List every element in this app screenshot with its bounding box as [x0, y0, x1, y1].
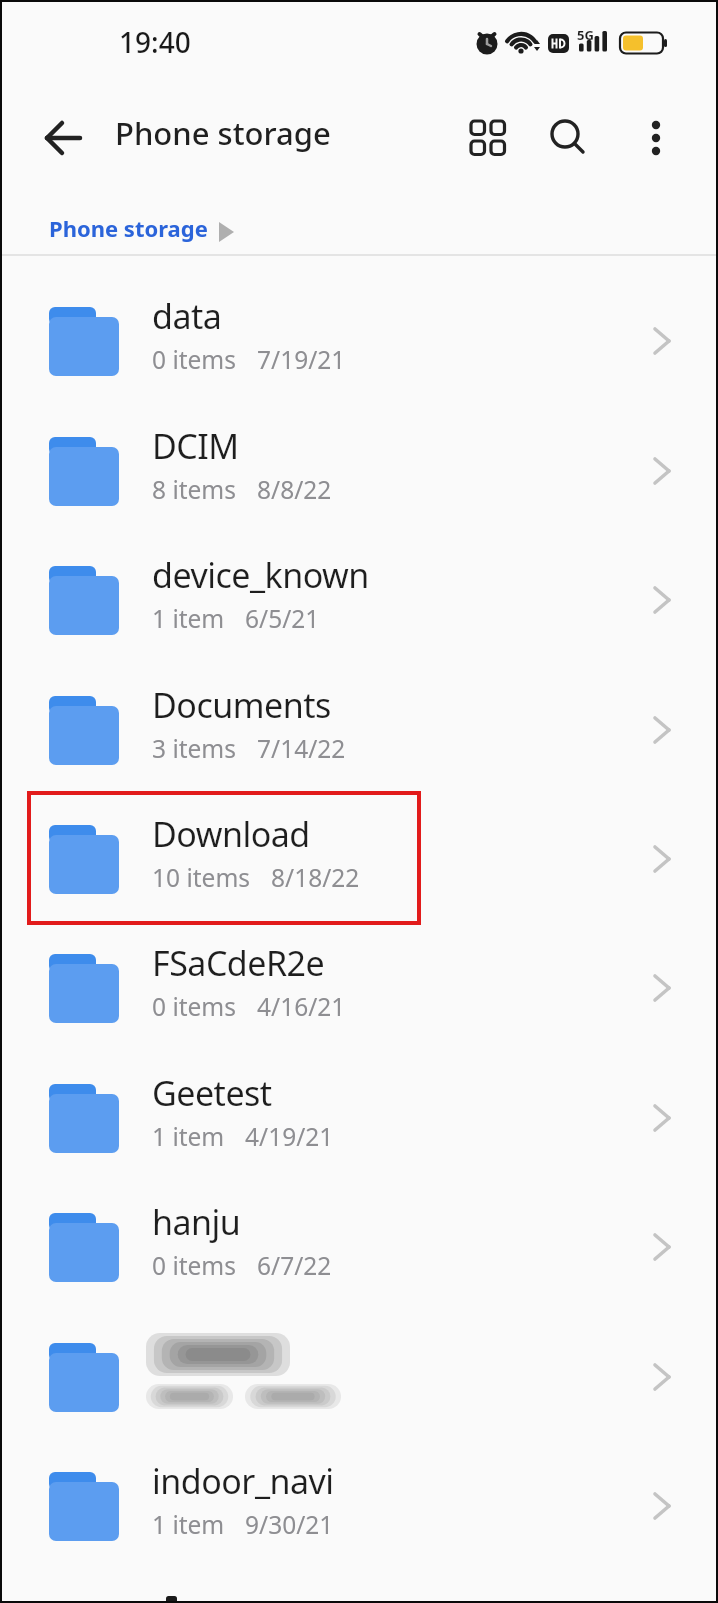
staticText: 1 item — [152, 1120, 225, 1153]
button[interactable]: Phone storage — [36, 204, 251, 250]
staticText: 19:40 — [119, 23, 191, 61]
button[interactable] — [0, 1312, 718, 1441]
staticText: indoor_navi — [152, 1458, 334, 1504]
button[interactable]: DCIM — [0, 406, 718, 535]
staticText: 6/5/21 — [245, 602, 320, 635]
staticText: 8 items — [152, 473, 237, 506]
staticText: data — [152, 293, 222, 339]
staticText: hanju — [152, 1199, 241, 1245]
staticText: 6/7/22 — [257, 1249, 332, 1282]
button[interactable]: Documents — [0, 665, 718, 794]
staticText: device_known — [152, 552, 369, 598]
staticText: Phone storage — [49, 213, 208, 243]
staticText: Download — [152, 811, 310, 857]
button[interactable] — [462, 112, 514, 164]
staticText: DCIM — [152, 423, 239, 469]
staticText: 8/18/22 — [271, 861, 360, 894]
staticText: 4/19/21 — [245, 1120, 334, 1153]
staticText: 1 item — [152, 1508, 225, 1541]
staticText: 3 items — [152, 732, 237, 765]
button[interactable] — [36, 112, 92, 164]
staticText: 1 item — [152, 602, 225, 635]
staticText: 0 items — [152, 1249, 237, 1282]
staticText: 0 items — [152, 343, 237, 376]
staticText: Phone storage — [115, 112, 331, 154]
staticText: 7/19/21 — [257, 343, 346, 376]
button[interactable]: indoor_navi — [0, 1441, 718, 1570]
staticText: 5G — [577, 26, 594, 44]
button[interactable]: hanju — [0, 1182, 718, 1311]
staticText: Documents — [152, 682, 331, 728]
staticText: Geetest — [152, 1070, 272, 1116]
button[interactable]: Geetest — [0, 1053, 718, 1182]
staticText: 0 items — [152, 990, 237, 1023]
button[interactable]: FSaCdeR2e — [0, 923, 718, 1052]
staticText: 7/14/22 — [257, 732, 346, 765]
staticText: 4/16/21 — [257, 990, 346, 1023]
staticText: 10 items — [152, 861, 251, 894]
button[interactable]: Download — [0, 794, 718, 923]
button[interactable] — [630, 112, 682, 164]
staticText: 8/8/22 — [257, 473, 332, 506]
button[interactable] — [542, 112, 594, 164]
button[interactable]: data — [0, 276, 718, 405]
button[interactable]: device_known — [0, 535, 718, 664]
staticText: FSaCdeR2e — [152, 940, 325, 986]
staticText: 9/30/21 — [245, 1508, 334, 1541]
